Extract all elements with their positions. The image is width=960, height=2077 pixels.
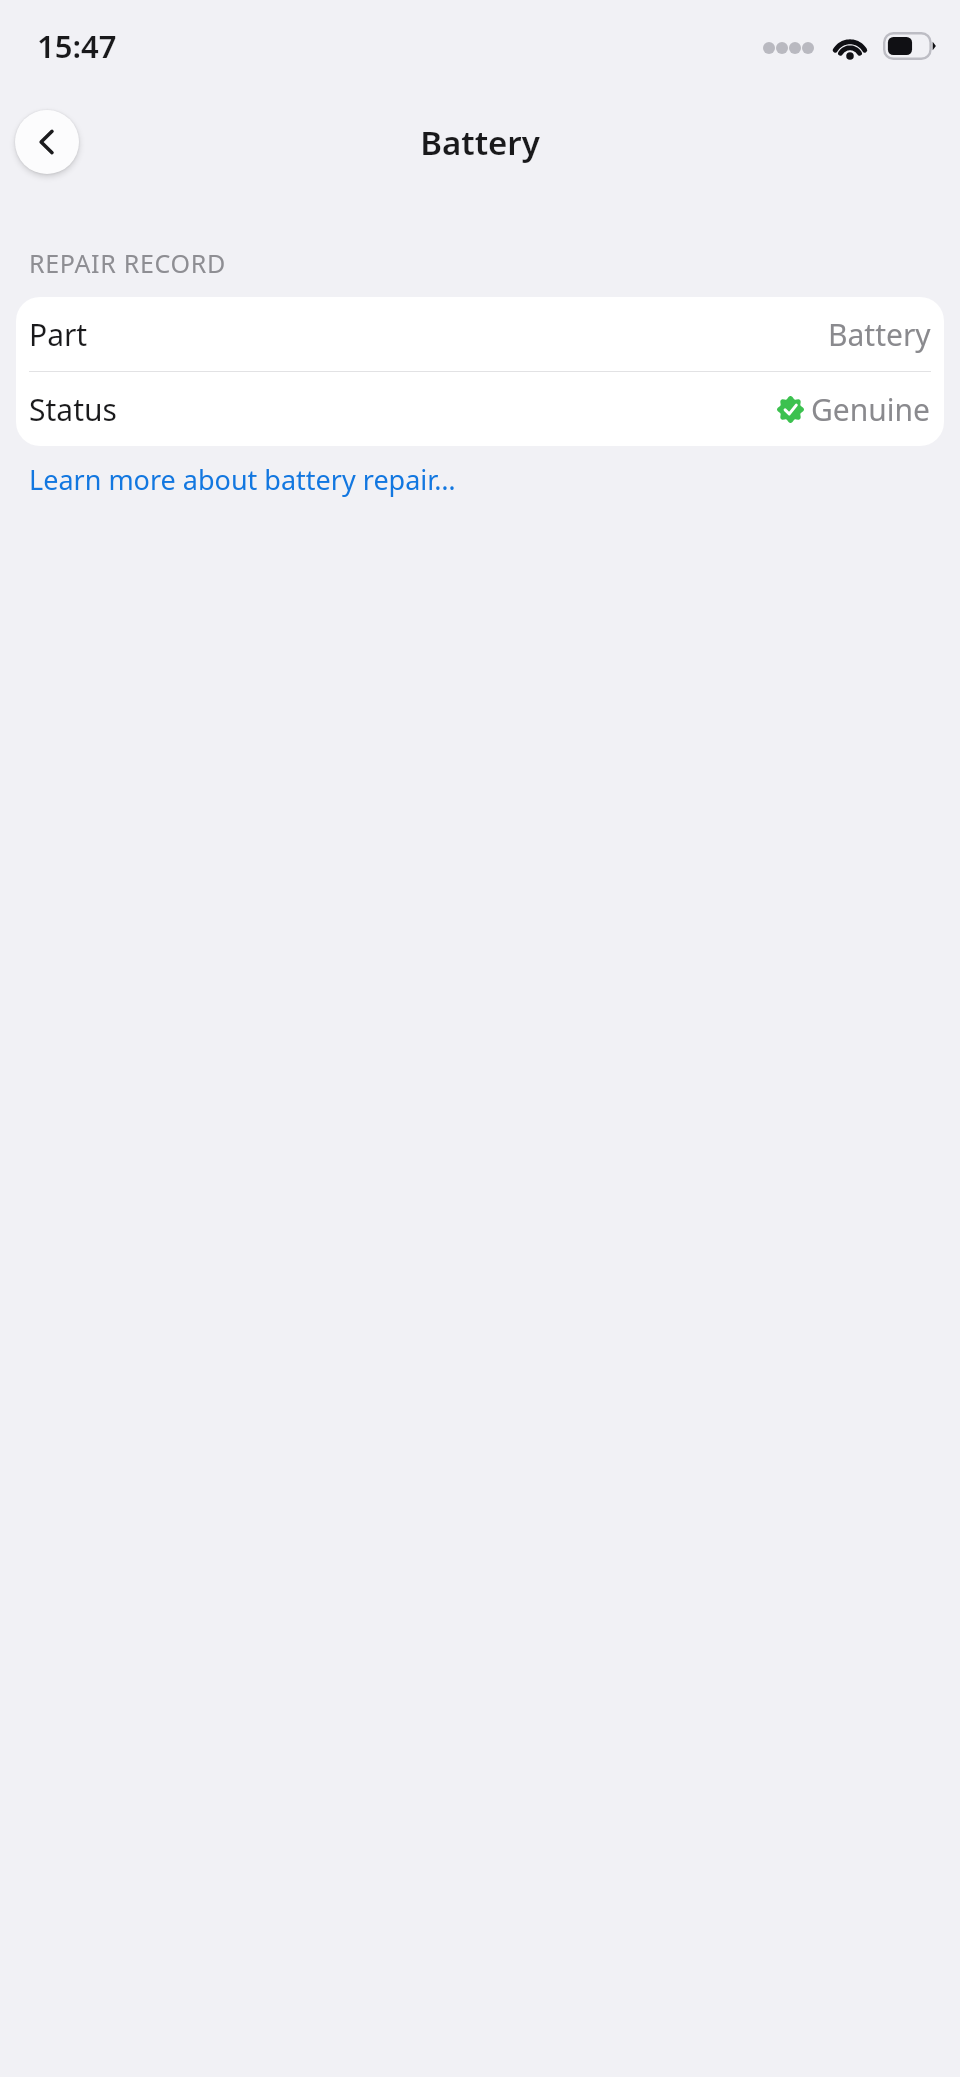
staticText: REPAIR RECORD [29,246,227,280]
staticText: Battery [420,120,540,165]
staticText: 15:47 [37,25,117,67]
staticText: Genuine [811,389,931,430]
staticText: Learn more about battery repair… [29,461,456,498]
button[interactable]: Back [15,110,79,174]
staticText: Part [29,314,88,355]
button[interactable]: Part [16,297,944,371]
button[interactable]: Status [16,372,944,446]
button[interactable]: Learn more about battery repair… [29,461,456,498]
staticText: Status [29,389,117,430]
staticText: Battery [828,314,931,355]
